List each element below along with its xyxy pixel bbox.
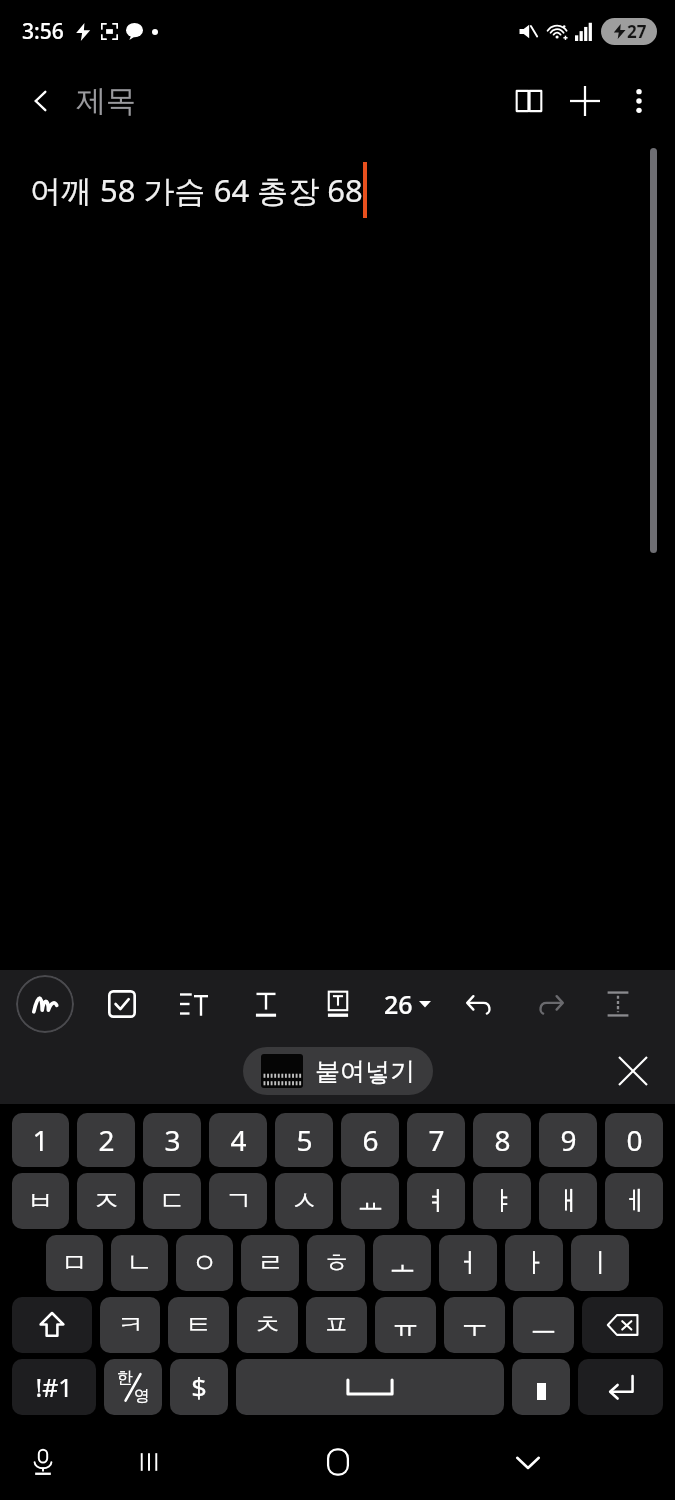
button[interactable]: 붙여넣기 — [243, 1047, 433, 1095]
button[interactable]: 6 — [341, 1113, 399, 1167]
button[interactable]: ㅅ — [275, 1173, 333, 1229]
staticText: $ — [191, 1369, 207, 1406]
button[interactable]: Line spacing — [597, 983, 639, 1025]
button[interactable]: space — [236, 1359, 504, 1415]
staticText: ㅍ — [323, 1308, 350, 1342]
staticText: ㄷ — [159, 1184, 186, 1218]
staticText: 7 — [428, 1121, 445, 1159]
button[interactable]: ㅛ — [341, 1173, 399, 1229]
button[interactable]: Handwriting — [16, 975, 74, 1033]
staticText: 0 — [626, 1121, 643, 1159]
button[interactable]: Close — [607, 1045, 659, 1097]
button[interactable]: Reading mode — [501, 73, 557, 129]
button[interactable]: ㅓ — [439, 1235, 497, 1291]
staticText: ㅌ — [185, 1308, 212, 1342]
staticText: ㅗ — [389, 1246, 416, 1280]
staticText: ㅎ — [323, 1246, 350, 1280]
button[interactable]: ㅐ — [539, 1173, 597, 1229]
button[interactable]: 0 — [605, 1113, 663, 1167]
button[interactable]: 3 — [143, 1113, 201, 1167]
staticText: ㅑ — [489, 1184, 516, 1218]
button[interactable]: Text style — [244, 982, 288, 1026]
button[interactable]: ㅈ — [77, 1173, 135, 1229]
button[interactable]: ㅇ — [176, 1235, 233, 1291]
button[interactable]: ㅑ — [473, 1173, 531, 1229]
button[interactable]: ㄷ — [143, 1173, 201, 1229]
staticText: ㅋ — [117, 1308, 144, 1342]
button[interactable]: 5 — [275, 1113, 333, 1167]
staticText: ㅛ — [357, 1184, 384, 1218]
button[interactable]: Redo — [529, 982, 573, 1026]
button[interactable]: ㅋ — [100, 1297, 160, 1353]
button[interactable]: 4 — [209, 1113, 267, 1167]
staticText: ㅜ — [461, 1308, 488, 1342]
button[interactable]: hanyeong — [104, 1359, 162, 1415]
staticText: ㅔ — [621, 1184, 648, 1218]
staticText: 1 — [32, 1121, 49, 1159]
button[interactable]: Back — [14, 74, 68, 128]
button[interactable]: Text box — [316, 982, 360, 1026]
button[interactable]: ㅔ — [605, 1173, 663, 1229]
button[interactable]: 7 — [407, 1113, 465, 1167]
staticText: 9 — [560, 1121, 577, 1159]
button[interactable]: !#1 — [12, 1359, 96, 1415]
button[interactable]: Add — [557, 73, 613, 129]
button[interactable]: ㅍ — [306, 1297, 367, 1353]
button[interactable]: ㅂ — [12, 1173, 69, 1229]
button[interactable]: ㅜ — [444, 1297, 505, 1353]
staticText: ㅡ — [530, 1308, 557, 1342]
button[interactable]: $ — [170, 1359, 228, 1415]
button[interactable]: ㄴ — [111, 1235, 168, 1291]
button[interactable]: shift — [12, 1297, 92, 1353]
button[interactable]: 26 — [380, 987, 435, 1021]
staticText: ㅣ — [587, 1246, 614, 1280]
button[interactable]: Voice input — [14, 1433, 72, 1491]
button[interactable]: ㅊ — [237, 1297, 298, 1353]
button[interactable]: ㅠ — [375, 1297, 436, 1353]
staticText: 6 — [362, 1121, 379, 1159]
button[interactable]: backspace — [582, 1297, 663, 1353]
button[interactable]: ㅁ — [46, 1235, 103, 1291]
staticText: 3 — [164, 1121, 181, 1159]
staticText: ㅏ — [521, 1246, 548, 1280]
button[interactable]: 2 — [77, 1113, 135, 1167]
staticText: !#1 — [35, 1370, 73, 1404]
button[interactable]: ㅡ — [513, 1297, 574, 1353]
button[interactable]: 8 — [473, 1113, 531, 1167]
button[interactable]: Undo — [457, 982, 501, 1026]
button[interactable]: Paragraph style — [172, 982, 216, 1026]
staticText: 4 — [230, 1121, 247, 1159]
button[interactable]: ㅗ — [373, 1235, 431, 1291]
staticText: 3:56 — [22, 17, 64, 46]
button[interactable]: 1 — [12, 1113, 69, 1167]
button[interactable]: ㄱ — [209, 1173, 267, 1229]
button[interactable]: 9 — [539, 1113, 597, 1167]
button[interactable]: period — [512, 1359, 570, 1415]
button[interactable]: ㅕ — [407, 1173, 465, 1229]
staticText: 2 — [98, 1121, 115, 1159]
staticText: ㅅ — [291, 1184, 318, 1218]
staticText: ㅠ — [392, 1308, 419, 1342]
staticText: 제목 — [76, 82, 136, 120]
button[interactable]: ㄹ — [241, 1235, 299, 1291]
staticText: ㅕ — [423, 1184, 450, 1218]
button[interactable]: ㅣ — [571, 1235, 629, 1291]
staticText: 26 — [384, 987, 413, 1021]
staticText: ㅓ — [455, 1246, 482, 1280]
button[interactable]: enter — [578, 1359, 663, 1415]
staticText: 8 — [494, 1121, 511, 1159]
staticText: ㅁ — [61, 1246, 88, 1280]
staticText: ㄹ — [257, 1246, 284, 1280]
button[interactable]: Home — [307, 1431, 369, 1493]
button[interactable]: Checklist — [100, 982, 144, 1026]
button[interactable]: Hide keyboard — [499, 1433, 557, 1491]
button[interactable]: More options — [613, 75, 665, 127]
button[interactable]: Recent apps — [120, 1433, 178, 1491]
staticText: ㄴ — [126, 1246, 153, 1280]
button[interactable]: ㅏ — [505, 1235, 563, 1291]
staticText: ㅈ — [93, 1184, 120, 1218]
staticText: 27 — [627, 20, 647, 43]
button[interactable]: ㅎ — [307, 1235, 365, 1291]
button[interactable]: ㅌ — [168, 1297, 229, 1353]
staticText: ㅂ — [27, 1184, 54, 1218]
